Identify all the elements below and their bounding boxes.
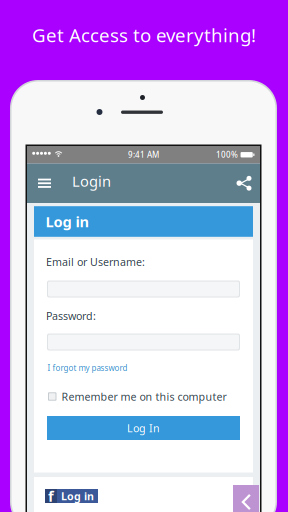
staticText: I forgot my password	[47, 363, 127, 373]
staticText: 9:41 AM	[128, 149, 159, 160]
staticText: Log In	[127, 421, 160, 435]
button[interactable]: Log In	[47, 416, 240, 440]
staticText: Password:	[46, 309, 96, 323]
staticText: Remember me on this computer	[61, 389, 226, 404]
button[interactable]: I forgot my password	[47, 362, 240, 374]
button[interactable]: f	[45, 489, 98, 503]
staticText: Get Access to everything!	[32, 23, 256, 47]
staticText: Login	[72, 171, 111, 191]
staticText: 100%	[216, 149, 238, 160]
button[interactable]: Menu	[28, 163, 60, 203]
staticText: Log in	[45, 212, 89, 231]
button[interactable]: Remember me on this computer	[48, 389, 241, 403]
button[interactable]: Share	[228, 163, 260, 203]
staticText: f	[48, 486, 54, 506]
staticText: Email or Username:	[46, 255, 145, 269]
staticText: Log in	[61, 489, 94, 503]
